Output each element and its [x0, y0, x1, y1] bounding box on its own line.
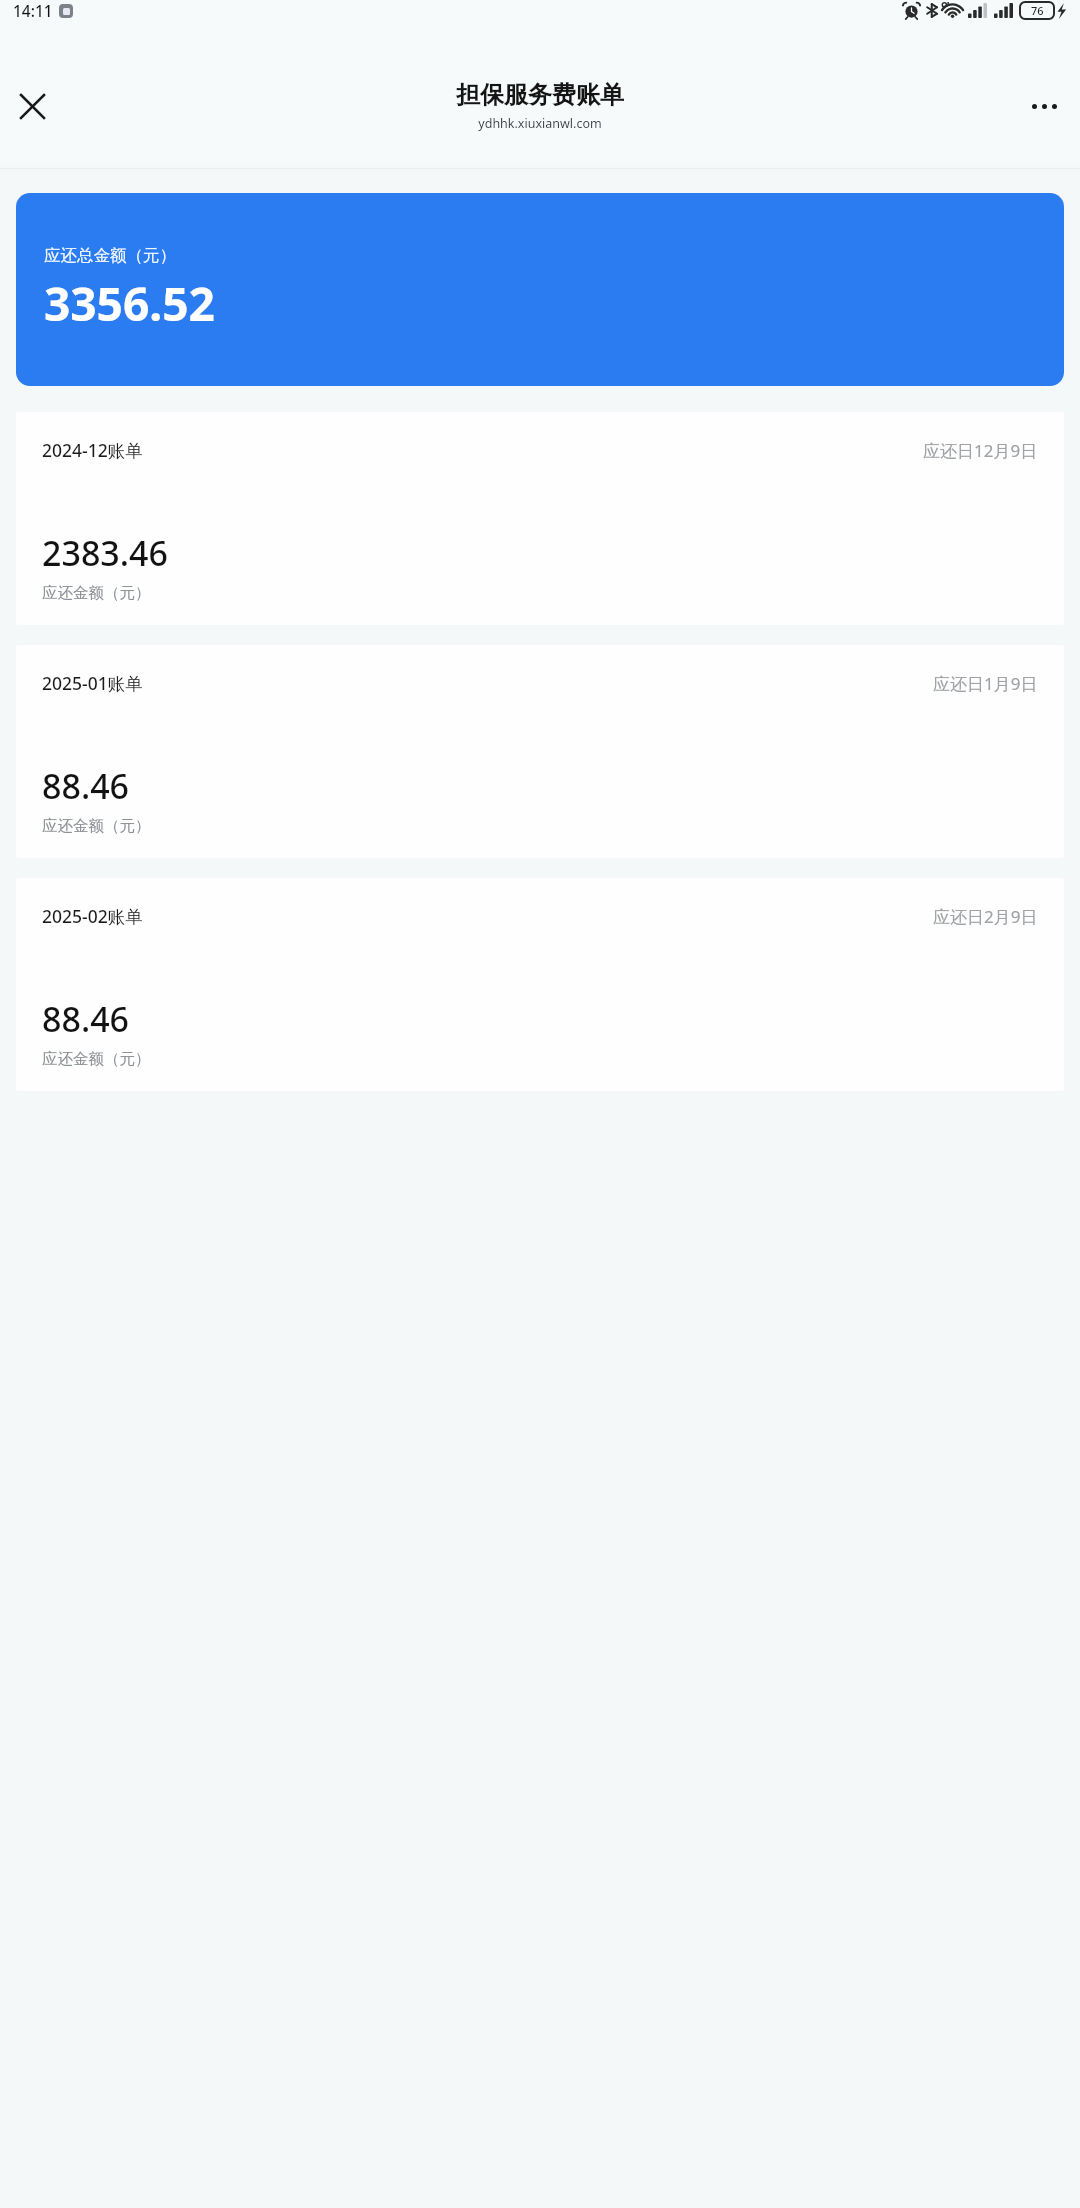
staticText: 担保服务费账单 [456, 80, 624, 110]
staticText: 应还日12月9日 [923, 439, 1038, 462]
staticText: 2025-02账单 [42, 904, 143, 928]
staticText: 88.46 [42, 763, 130, 809]
staticText: 3356.52 [44, 272, 215, 335]
staticText: 2383.46 [42, 530, 168, 576]
staticText: 88.46 [42, 996, 130, 1042]
staticText: 应还总金额（元） [44, 245, 176, 266]
button[interactable]: More options [1020, 82, 1068, 130]
staticText: 14:11 [13, 0, 53, 21]
staticText: 应还日2月9日 [933, 905, 1038, 928]
button[interactable]: Close [8, 82, 56, 130]
staticText: 2024-12账单 [42, 438, 143, 462]
button[interactable]: 2025-02账单 [16, 878, 1064, 1091]
staticText: 应还金额（元） [42, 583, 151, 603]
button[interactable]: 2025-01账单 [16, 645, 1064, 858]
staticText: 76 [1031, 3, 1044, 18]
staticText: 应还金额（元） [42, 816, 151, 836]
staticText: 2025-01账单 [42, 671, 143, 695]
button[interactable]: 2024-12账单 [16, 412, 1064, 625]
staticText: 应还金额（元） [42, 1049, 151, 1069]
staticText: 应还日1月9日 [933, 672, 1038, 695]
staticText: ydhhk.xiuxianwl.com [478, 115, 602, 132]
button[interactable]: 应还总金额（元） [16, 193, 1064, 386]
